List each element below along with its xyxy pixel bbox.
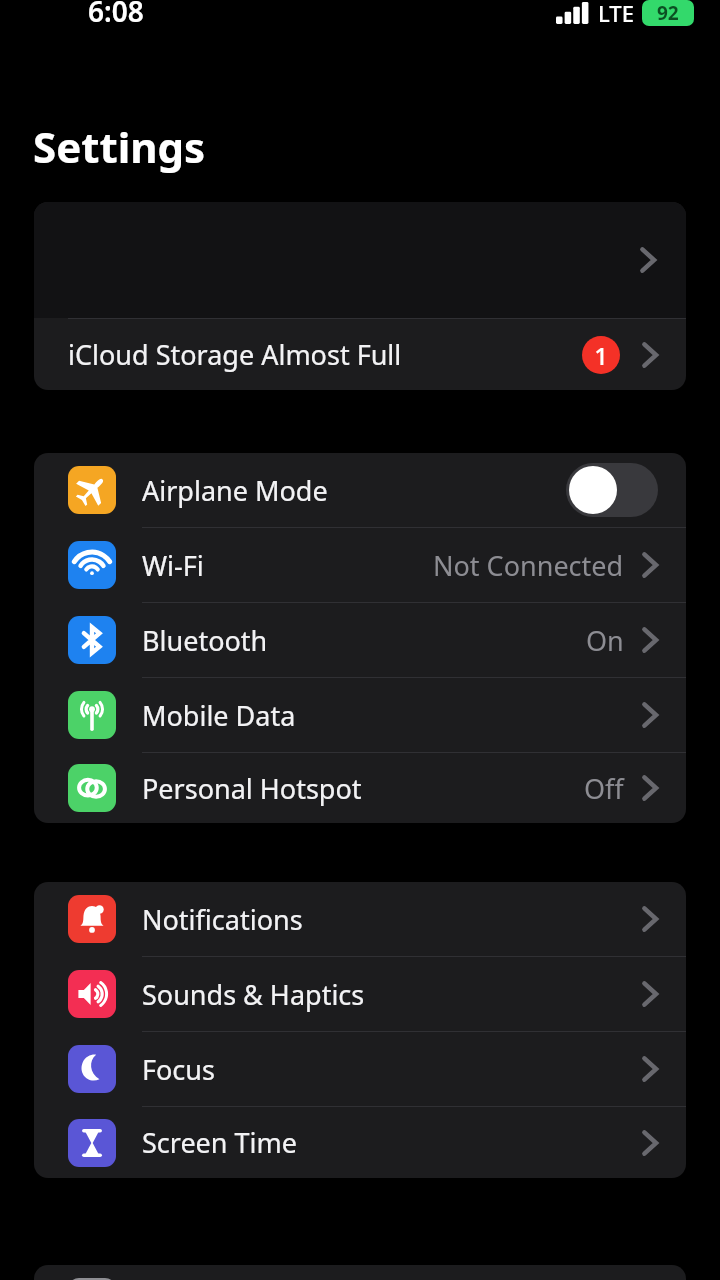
button[interactable]: Wi-Fi — [34, 528, 686, 602]
staticText: Sounds & Haptics — [142, 976, 365, 1013]
staticText: LTE — [598, 0, 634, 28]
button[interactable]: Airplane Mode — [34, 453, 686, 527]
staticText: Bluetooth — [142, 622, 268, 659]
button[interactable]: Notifications — [34, 882, 686, 956]
button[interactable]: iCloud Storage Almost Full — [34, 319, 686, 390]
staticText: Airplane Mode — [142, 472, 328, 509]
button[interactable]: Apple ID — [34, 202, 686, 318]
staticText: Not Connected — [433, 547, 624, 584]
staticText: Mobile Data — [142, 697, 296, 734]
button[interactable]: Focus — [34, 1032, 686, 1106]
button[interactable]: Screen Time — [34, 1107, 686, 1178]
staticText: On — [586, 622, 624, 659]
button[interactable]: General — [34, 1265, 686, 1280]
staticText: iCloud Storage Almost Full — [68, 336, 402, 373]
staticText: Notifications — [142, 901, 303, 938]
button[interactable]: Mobile Data — [34, 678, 686, 752]
staticText: Screen Time — [142, 1124, 298, 1161]
staticText: Wi-Fi — [142, 547, 204, 584]
button[interactable]: Airplane Mode toggle — [566, 463, 658, 517]
button[interactable]: Personal Hotspot — [34, 753, 686, 823]
staticText: 92 — [657, 0, 679, 26]
staticText: Focus — [142, 1051, 215, 1088]
button[interactable]: Sounds & Haptics — [34, 957, 686, 1031]
button[interactable]: Bluetooth — [34, 603, 686, 677]
staticText: Off — [584, 770, 624, 807]
staticText: 6:08 — [88, 0, 144, 26]
staticText: Personal Hotspot — [142, 770, 362, 807]
staticText: Settings — [33, 118, 206, 175]
staticText: 1 — [594, 339, 608, 372]
